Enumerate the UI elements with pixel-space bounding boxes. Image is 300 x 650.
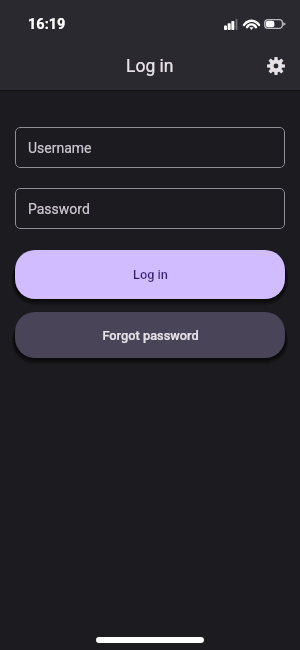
staticText: Username — [28, 140, 92, 156]
button[interactable]: Forgot password — [15, 312, 285, 358]
button[interactable]: Password — [15, 188, 285, 229]
staticText: Forgot password — [102, 328, 199, 343]
staticText: Log in — [126, 56, 174, 77]
button[interactable]: Log in — [15, 250, 285, 299]
staticText: Log in — [133, 267, 168, 282]
staticText: 16:19 — [28, 16, 66, 33]
button[interactable]: Username — [15, 127, 285, 168]
button[interactable]: Settings — [257, 47, 295, 84]
staticText: Password — [28, 201, 90, 217]
